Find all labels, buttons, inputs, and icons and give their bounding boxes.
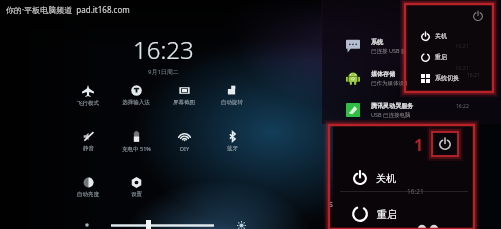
staticText: DIY bbox=[180, 145, 189, 152]
button[interactable]: 静音 bbox=[64, 131, 112, 156]
staticText: 重启 bbox=[435, 53, 447, 61]
button[interactable]: 关机 bbox=[353, 166, 458, 190]
staticText: 屏幕截图 bbox=[173, 99, 195, 106]
staticText: 16:23 bbox=[133, 33, 194, 66]
staticText: 充电中 51% bbox=[122, 145, 151, 153]
staticText: 16:21 bbox=[407, 187, 424, 196]
button[interactable]: Power bbox=[473, 11, 483, 21]
button[interactable]: DIY bbox=[160, 131, 208, 156]
button[interactable]: 选择输入法 bbox=[112, 85, 160, 110]
button[interactable]: 飞行模式 bbox=[64, 85, 112, 110]
staticText: SB 要诉 bbox=[329, 200, 354, 210]
button[interactable]: 关机 bbox=[421, 30, 483, 42]
button[interactable]: 蓝牙 bbox=[208, 131, 256, 156]
staticText: 静音 bbox=[83, 145, 94, 152]
staticText: 16:21 bbox=[456, 71, 469, 78]
button[interactable]: 腾讯灵动哭服务 bbox=[346, 98, 476, 124]
button[interactable]: 系统 bbox=[346, 34, 476, 60]
staticText: 飞行模式 bbox=[77, 100, 99, 107]
button[interactable]: 媒体存储 bbox=[346, 66, 476, 92]
staticText: 16:21 bbox=[467, 72, 480, 79]
staticText: 关机 bbox=[435, 32, 447, 40]
staticText: USB 已连接电脑 bbox=[371, 111, 411, 119]
staticText: 1 bbox=[414, 134, 424, 156]
staticText: 选择输入法 bbox=[122, 99, 150, 106]
staticText: 关机 bbox=[376, 172, 396, 185]
button[interactable]: 自动亮度 bbox=[64, 177, 112, 202]
staticText: 16:22 bbox=[456, 103, 469, 110]
staticText: 9月1日周二 bbox=[148, 68, 179, 76]
button[interactable]: 系统切换 bbox=[421, 72, 483, 84]
staticText: 系统切换 bbox=[435, 74, 459, 82]
staticText: 16:21 bbox=[455, 64, 470, 71]
staticText: 已连接 USB 影... bbox=[371, 47, 411, 55]
staticText: 你的·平板电脑频道 pad.it168.com bbox=[6, 4, 130, 15]
staticText: 系统 bbox=[371, 38, 383, 46]
staticText: 蓝牙 bbox=[227, 145, 238, 152]
staticText: 自动亮度 bbox=[77, 191, 99, 198]
button[interactable]: 自动旋转 bbox=[208, 85, 256, 110]
button[interactable]: 屏幕截图 bbox=[160, 85, 208, 110]
staticText: 媒体存储 bbox=[371, 70, 395, 78]
button[interactable]: Power bbox=[431, 131, 459, 157]
button[interactable]: 重启 bbox=[352, 202, 457, 226]
staticText: 腾讯灵动哭服务 bbox=[371, 102, 413, 110]
staticText: 设置 bbox=[131, 191, 142, 198]
staticText: 已作为媒体设备... bbox=[371, 79, 414, 87]
staticText: 16:20 bbox=[456, 39, 469, 46]
button[interactable]: 重启 bbox=[421, 51, 483, 63]
staticText: 重启 bbox=[377, 208, 397, 221]
staticText: 16:21 bbox=[455, 42, 470, 49]
staticText: 自动旋转 bbox=[221, 99, 243, 106]
button[interactable]: 充电中 51% bbox=[112, 131, 160, 156]
button[interactable]: 设置 bbox=[112, 177, 160, 202]
